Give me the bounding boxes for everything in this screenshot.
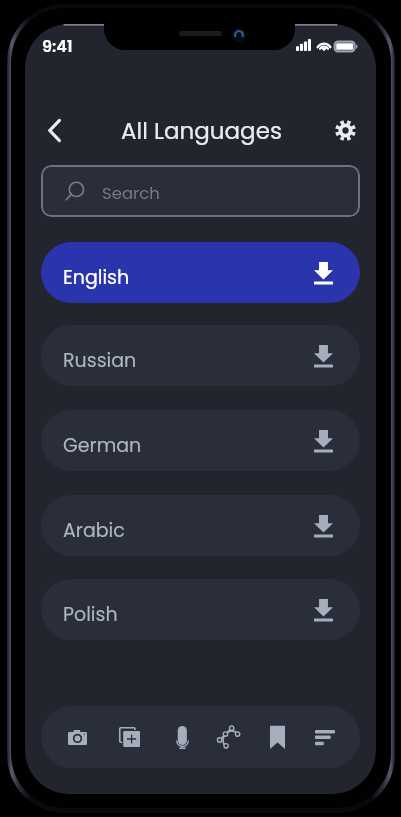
button[interactable]: Polish — [41, 579, 360, 640]
staticText: English — [63, 264, 130, 291]
button[interactable]: German — [41, 410, 360, 471]
button[interactable]: Bookmarks — [256, 706, 298, 768]
staticText: Arabic — [63, 517, 125, 544]
button[interactable]: Download English — [306, 256, 340, 290]
button[interactable]: Search — [41, 165, 360, 217]
button[interactable]: Download Russian — [306, 339, 340, 373]
staticText: Russian — [63, 347, 137, 374]
button[interactable]: Voice input — [161, 706, 203, 768]
button[interactable]: Back — [32, 108, 76, 152]
button[interactable]: Sort — [304, 706, 346, 768]
staticText: 9:41 — [42, 35, 73, 57]
button[interactable]: Curve tool — [207, 706, 249, 768]
button[interactable]: Add image — [108, 706, 150, 768]
button[interactable]: Download Arabic — [306, 509, 340, 543]
button[interactable]: English — [41, 242, 360, 303]
button[interactable]: Download German — [306, 424, 340, 458]
button[interactable]: Russian — [41, 325, 360, 386]
button[interactable]: Camera — [56, 706, 98, 768]
staticText: Polish — [63, 601, 118, 628]
staticText: German — [63, 432, 142, 459]
button[interactable]: Settings — [323, 108, 367, 152]
staticText: Search — [102, 182, 160, 205]
button[interactable]: Arabic — [41, 495, 360, 556]
staticText: All Languages — [121, 115, 282, 147]
button[interactable]: Download Polish — [306, 593, 340, 627]
